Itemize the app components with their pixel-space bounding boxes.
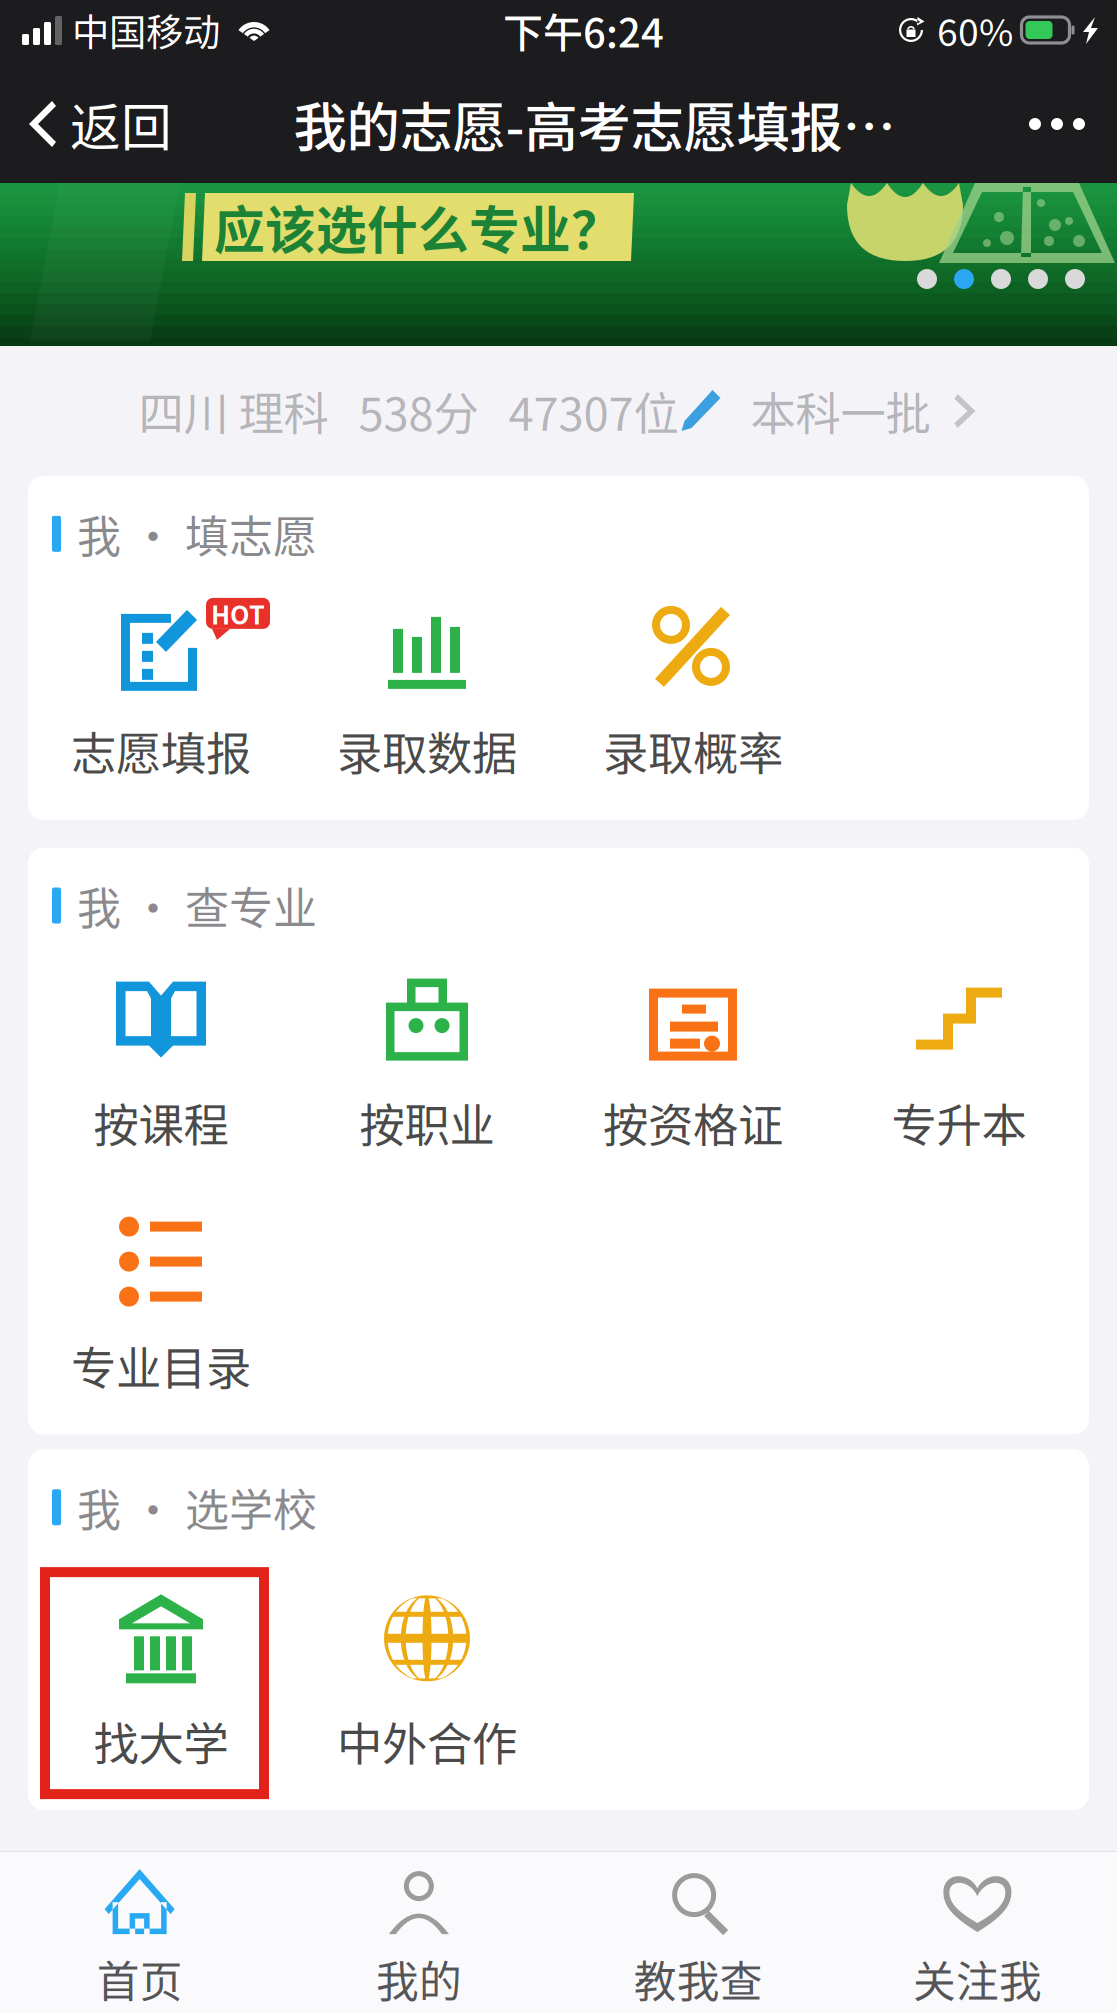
staticText: 中国移动 [72, 3, 220, 57]
staticText: 录取数据 [337, 718, 517, 783]
button[interactable]: 我的 [279, 1852, 558, 2013]
staticText: 我 · 选学校 [77, 1475, 317, 1539]
staticText: 专业目录 [71, 1333, 251, 1398]
staticText: 找大学 [93, 1708, 228, 1774]
button[interactable]: 中外合作 [294, 1566, 560, 1796]
button[interactable]: 按课程 [28, 947, 294, 1177]
staticText: 按职业 [359, 1090, 494, 1155]
staticText: 中外合作 [337, 1708, 517, 1774]
staticText: 我的 [376, 1948, 462, 2010]
staticText: 四川 理科 [138, 378, 328, 444]
button[interactable]: 首页 [0, 1852, 279, 2013]
staticText: 538分 [358, 378, 478, 444]
staticText: 下午6:24 [503, 1, 664, 59]
button[interactable]: 关注我 [838, 1852, 1117, 2013]
button[interactable]: 录取概率 [560, 576, 826, 806]
button[interactable]: HOT [28, 576, 294, 806]
button[interactable]: 专业目录 [28, 1190, 294, 1420]
button[interactable]: 按资格证 [560, 947, 826, 1177]
staticText: HOT [211, 595, 265, 632]
button[interactable]: 找大学 [28, 1566, 294, 1796]
staticText: 教我查 [634, 1948, 763, 2010]
button[interactable]: Promotional banner [0, 188, 1117, 346]
staticText: 按课程 [93, 1090, 228, 1155]
button[interactable]: More options [997, 60, 1117, 188]
button[interactable]: 返回 [0, 60, 192, 188]
staticText: 应该选什么专业？ [214, 190, 622, 264]
staticText: 我的志愿-高考志愿填报… [293, 85, 895, 163]
button[interactable]: 录取数据 [294, 576, 560, 806]
staticText: 我 · 填志愿 [77, 502, 317, 566]
button[interactable]: 专升本 [826, 947, 1092, 1177]
staticText: 返回 [70, 87, 172, 161]
button[interactable]: 教我查 [558, 1852, 838, 2013]
staticText: 录取概率 [603, 718, 783, 783]
staticText: 首页 [97, 1948, 183, 2010]
staticText: 志愿填报 [71, 718, 251, 783]
staticText: 60% [937, 3, 1013, 57]
staticText: 47307位 [508, 378, 678, 444]
staticText: 关注我 [913, 1948, 1042, 2010]
button[interactable]: 四川 理科 [0, 346, 1117, 476]
button[interactable]: 按职业 [294, 947, 560, 1177]
staticText: 专升本 [891, 1090, 1026, 1155]
staticText: 按资格证 [603, 1090, 783, 1155]
staticText: 本科一批 [750, 378, 930, 444]
staticText: 我 · 查专业 [77, 874, 317, 937]
